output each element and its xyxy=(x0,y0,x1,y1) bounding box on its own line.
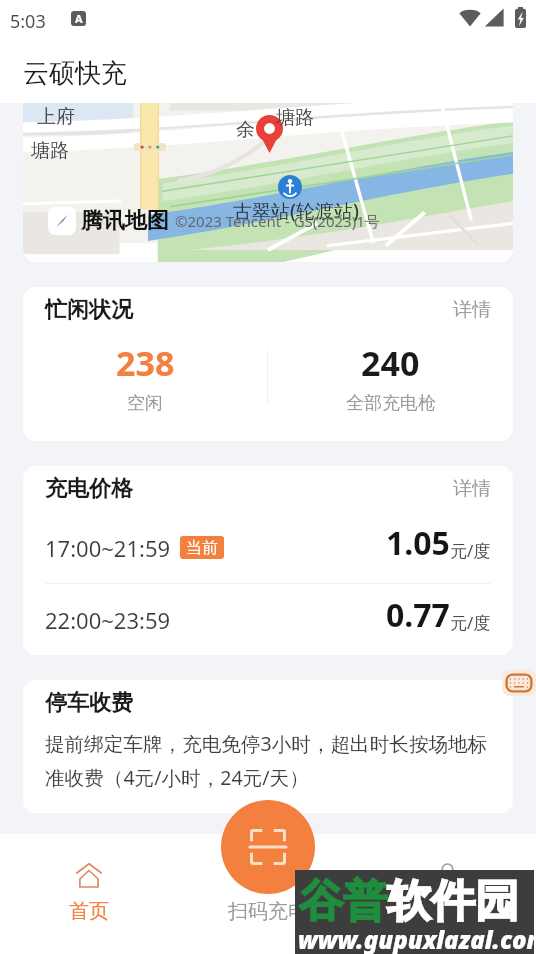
button[interactable]: 17:00~21:59 xyxy=(23,512,513,583)
staticText: 详情 xyxy=(453,298,491,322)
staticText: 首页 xyxy=(69,899,109,924)
staticText: 塘路 xyxy=(276,106,314,130)
button[interactable]: 扫码充电 xyxy=(221,800,315,894)
staticText: A xyxy=(75,11,83,26)
staticText: 0.77 xyxy=(386,593,450,637)
staticText: 238 xyxy=(116,340,175,386)
staticText: 17:00~21:59 xyxy=(45,533,171,563)
staticText: 1.05 xyxy=(386,521,450,565)
button[interactable]: 首页 xyxy=(0,834,178,954)
staticText: 充电价格 xyxy=(45,475,133,503)
staticText: 5:03 xyxy=(10,9,46,34)
staticText: 元/度 xyxy=(450,611,491,634)
staticText: 塘路 xyxy=(31,139,69,163)
staticText: 240 xyxy=(361,340,420,386)
staticText: 软件园 xyxy=(387,874,519,929)
button[interactable]: 键盘 xyxy=(502,670,536,696)
staticText: 忙闲状况 xyxy=(45,296,133,324)
button[interactable]: 22:00~23:59 xyxy=(23,584,513,655)
staticText: 谷普 xyxy=(299,874,387,929)
staticText: 余 xyxy=(236,118,255,142)
button[interactable]: 扫码充电 xyxy=(178,834,357,954)
staticText: 我的 xyxy=(427,899,467,924)
staticText: 停车收费 xyxy=(45,689,133,717)
staticText: 元/度 xyxy=(450,539,491,562)
staticText: 腾讯地图 xyxy=(81,207,169,235)
button[interactable]: 详情 xyxy=(431,469,513,509)
staticText: www.gupuxlazal.com xyxy=(298,923,536,954)
staticText: 当前 xyxy=(186,538,218,558)
staticText: 上府 xyxy=(37,105,75,129)
staticText: 古翠站(轮渡站) xyxy=(233,198,359,224)
staticText: 扫码充电 xyxy=(228,899,308,924)
button[interactable]: 我的 xyxy=(357,834,536,954)
staticText: ©2023 Tencent - GS(2023)1号 xyxy=(175,211,380,231)
staticText: 空闲 xyxy=(127,392,163,415)
staticText: 详情 xyxy=(453,477,491,501)
staticText: 22:00~23:59 xyxy=(45,605,171,635)
staticText: 云硕快充 xyxy=(23,57,127,90)
staticText: 全部充电枪 xyxy=(346,392,436,415)
staticText: 提前绑定车牌，充电免停3小时，超出时长按场地标准收费（4元/小时，24元/天） xyxy=(45,730,494,791)
button[interactable]: 地图 xyxy=(23,103,513,262)
button[interactable]: 详情 xyxy=(431,290,513,330)
